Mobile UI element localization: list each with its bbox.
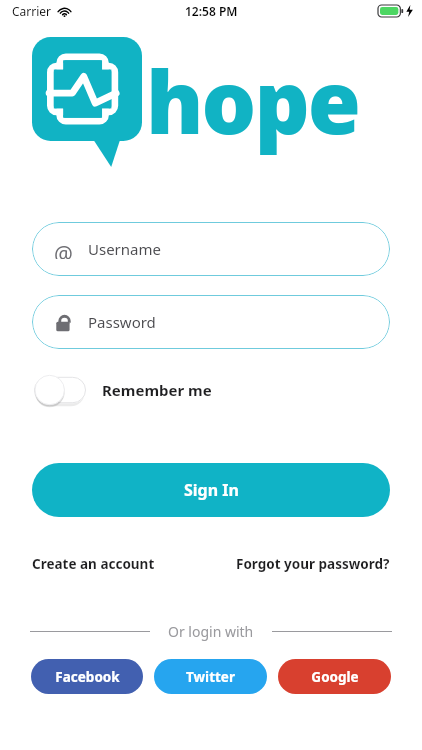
staticText: @ <box>54 240 73 259</box>
staticText: Password <box>88 312 156 332</box>
button[interactable]: @ <box>32 222 390 276</box>
staticText: Carrier <box>12 3 52 19</box>
staticText: hope <box>146 42 359 159</box>
staticText: Google <box>311 668 359 686</box>
button[interactable]: Facebook <box>31 659 143 694</box>
button[interactable]: Sign In <box>32 463 390 517</box>
staticText: Or login with <box>168 622 254 641</box>
button[interactable]: Twitter <box>154 659 267 694</box>
staticText: Sign In <box>184 479 239 501</box>
button[interactable]: Password <box>32 295 390 349</box>
button[interactable]: Remember me <box>32 371 214 409</box>
staticText: Forgot your password? <box>236 555 390 573</box>
staticText: Create an account <box>32 555 155 573</box>
button[interactable]: Create an account <box>30 551 157 577</box>
staticText: Twitter <box>186 668 235 686</box>
staticText: Username <box>88 239 161 259</box>
staticText: Remember me <box>102 380 212 400</box>
button[interactable]: Forgot your password? <box>234 551 392 577</box>
staticText: Facebook <box>55 668 120 686</box>
staticText: 12:58 PM <box>185 3 238 19</box>
button[interactable]: Google <box>278 659 391 694</box>
